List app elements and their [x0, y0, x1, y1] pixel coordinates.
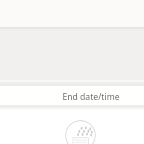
- button[interactable]: Celebration: [65, 120, 96, 144]
- button[interactable]: End date/time: [0, 86, 144, 105]
- staticText: End date/time: [62, 91, 120, 103]
